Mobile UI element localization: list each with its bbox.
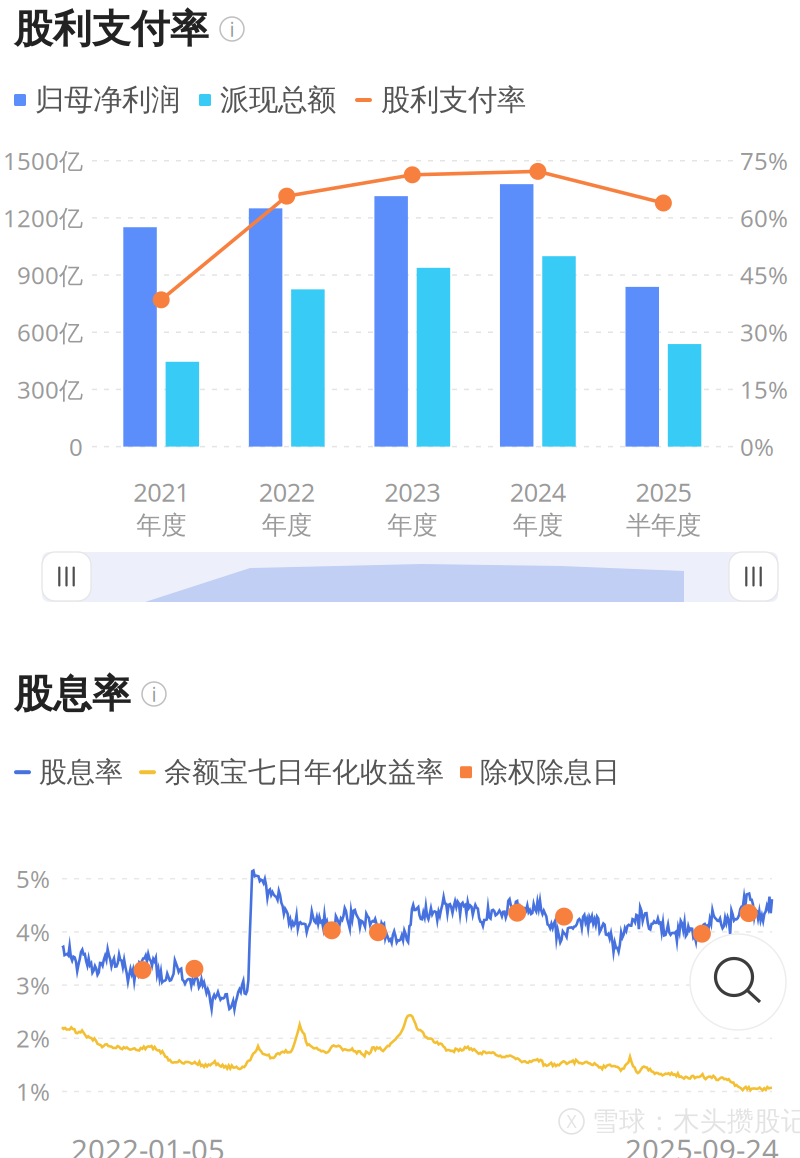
staticText: 1200亿: [3, 202, 83, 234]
staticText: 15%: [740, 373, 788, 405]
staticText: 2025-09-24: [625, 1130, 779, 1158]
staticText: 2%: [16, 1022, 50, 1054]
staticText: X: [566, 1110, 576, 1133]
staticText: 2024: [510, 475, 566, 509]
staticText: 归母净利润: [26, 82, 180, 118]
button[interactable]: Search: [690, 934, 786, 1030]
staticText: i: [229, 16, 234, 42]
staticText: 45%: [740, 259, 788, 291]
staticText: 30%: [740, 316, 788, 348]
staticText: 2022: [259, 475, 315, 509]
staticText: 股利支付率: [372, 82, 526, 118]
staticText: 1%: [16, 1076, 50, 1107]
staticText: 除权除息日: [472, 755, 620, 789]
staticText: 年度: [262, 510, 312, 541]
button[interactable]: 股利支付率: [14, 7, 244, 51]
staticText: 2025: [635, 475, 691, 509]
staticText: 300亿: [17, 373, 83, 405]
staticText: i: [151, 681, 156, 707]
staticText: 2021: [133, 475, 189, 509]
staticText: 5%: [16, 863, 50, 895]
staticText: 1500亿: [3, 145, 83, 177]
staticText: 2023: [384, 475, 440, 509]
staticText: 60%: [740, 202, 788, 234]
staticText: 4%: [16, 916, 50, 948]
staticText: 余额宝七日年化收益率: [156, 755, 444, 789]
staticText: 股息率: [14, 670, 131, 718]
staticText: 半年度: [626, 510, 701, 541]
staticText: 600亿: [17, 316, 83, 348]
staticText: 股利支付率: [14, 5, 209, 53]
staticText: 雪球：木头攒股记: [592, 1105, 800, 1138]
button[interactable]: 股息率: [14, 672, 166, 716]
staticText: 3%: [16, 969, 50, 1001]
staticText: 派现总额: [211, 82, 336, 118]
staticText: 年度: [513, 510, 563, 541]
staticText: 2022-01-05: [71, 1130, 225, 1158]
staticText: 0: [69, 431, 83, 463]
staticText: 股息率: [31, 755, 123, 789]
staticText: 年度: [136, 510, 186, 541]
staticText: 900亿: [17, 259, 83, 291]
staticText: 0%: [740, 431, 774, 463]
staticText: 75%: [740, 145, 788, 177]
staticText: 年度: [387, 510, 437, 541]
